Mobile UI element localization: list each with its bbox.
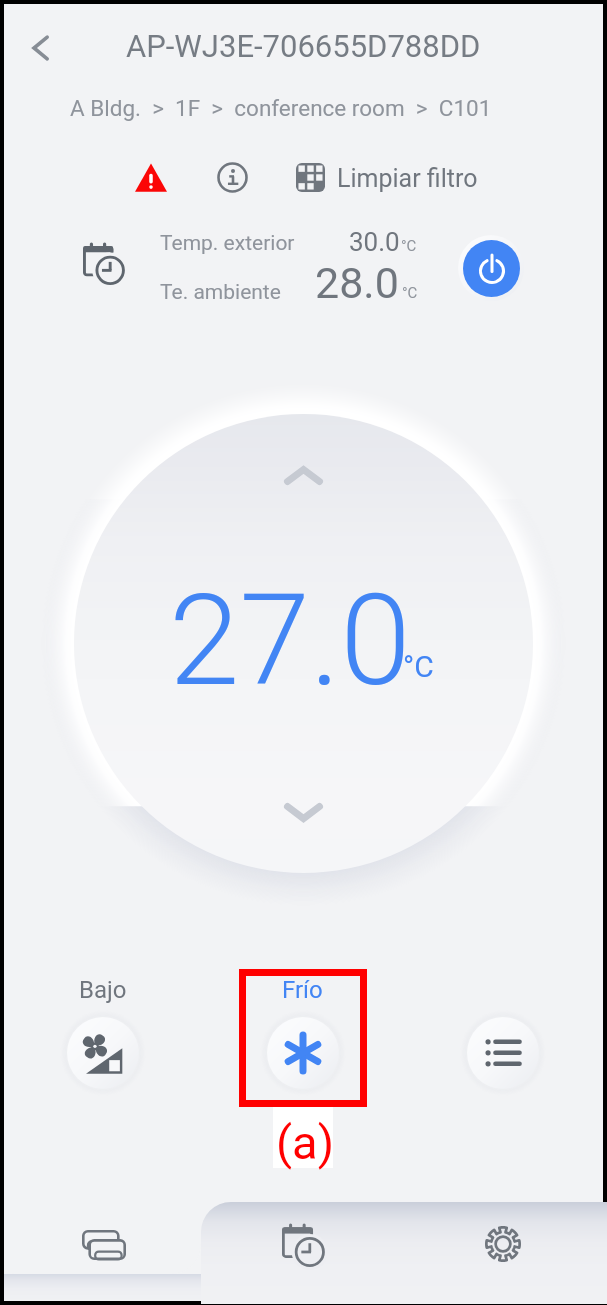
staticText: Bajo <box>79 976 127 1004</box>
staticText: Te. ambiente <box>160 280 281 305</box>
staticText: (a) <box>276 1115 335 1170</box>
button[interactable]: Fan speed: low <box>67 1017 139 1089</box>
staticText: Temp. exterior <box>160 231 295 256</box>
staticText: °C <box>401 237 417 255</box>
staticText: Limpiar filtro <box>337 164 478 193</box>
staticText: AP-WJ3E-706655D788DD <box>126 28 481 64</box>
staticText: °C <box>402 284 418 302</box>
button[interactable]: Back <box>12 20 68 76</box>
button[interactable]: Alert <box>127 154 175 202</box>
button[interactable]: Schedule <box>204 1213 404 1281</box>
button[interactable]: Information <box>208 153 256 201</box>
button[interactable]: Increase temperature <box>266 449 341 501</box>
button[interactable]: More options <box>467 1017 539 1089</box>
button[interactable]: Mode: cool <box>267 1017 339 1089</box>
staticText: 27.0 <box>169 566 411 715</box>
button[interactable]: Decrease temperature <box>266 786 341 838</box>
staticText: °C <box>403 649 434 684</box>
staticText: A Bldg. > 1F > conference room > C101 <box>70 95 492 121</box>
button[interactable]: Power <box>458 235 524 301</box>
button[interactable]: Settings <box>404 1210 602 1278</box>
button[interactable]: Limpiar filtro <box>296 152 478 202</box>
staticText: 28.0 <box>315 258 399 308</box>
staticText: 30.0 <box>349 227 400 257</box>
staticText: Frío <box>282 976 323 1004</box>
button[interactable]: Units <box>4 1199 201 1274</box>
